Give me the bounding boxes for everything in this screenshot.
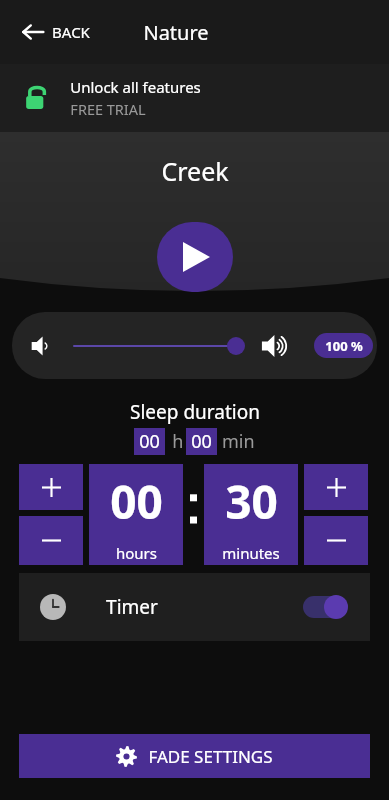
staticText: Creek <box>161 154 229 188</box>
button[interactable]: Unlock all features <box>0 64 389 132</box>
button[interactable]: FADE SETTINGS <box>19 734 370 778</box>
staticText: 00 <box>110 470 163 533</box>
staticText: FADE SETTINGS <box>148 745 273 768</box>
staticText: h <box>165 429 186 454</box>
staticText: min <box>217 429 255 454</box>
button[interactable] <box>74 333 236 359</box>
staticText: Sleep duration <box>130 399 260 425</box>
button[interactable]: Volume up <box>260 330 292 362</box>
button[interactable]: Increase <box>304 464 368 510</box>
staticText: Timer <box>106 594 158 620</box>
button[interactable]: Volume down <box>30 332 58 360</box>
staticText: 30 <box>225 470 278 533</box>
staticText: hours <box>116 543 157 563</box>
button[interactable]: Decrease <box>19 516 83 565</box>
staticText: FREE TRIAL <box>70 99 146 119</box>
staticText: BACK <box>52 22 90 42</box>
button[interactable]: 100 % <box>314 333 373 358</box>
staticText: Unlock all features <box>70 77 201 97</box>
staticText: Nature <box>143 19 209 46</box>
button[interactable]: 30 <box>204 464 298 565</box>
staticText: 100 % <box>325 337 363 355</box>
button[interactable]: Timer toggle <box>303 595 349 619</box>
staticText: 00 <box>191 429 212 454</box>
button[interactable]: Decrease <box>304 516 368 565</box>
button[interactable]: BACK <box>14 13 98 51</box>
staticText: 00 <box>139 429 160 454</box>
button[interactable]: 00 <box>89 464 183 565</box>
button[interactable]: Play <box>157 222 233 292</box>
button[interactable]: Increase <box>19 464 83 510</box>
button[interactable]: Timer <box>19 573 370 641</box>
staticText: minutes <box>222 543 280 563</box>
